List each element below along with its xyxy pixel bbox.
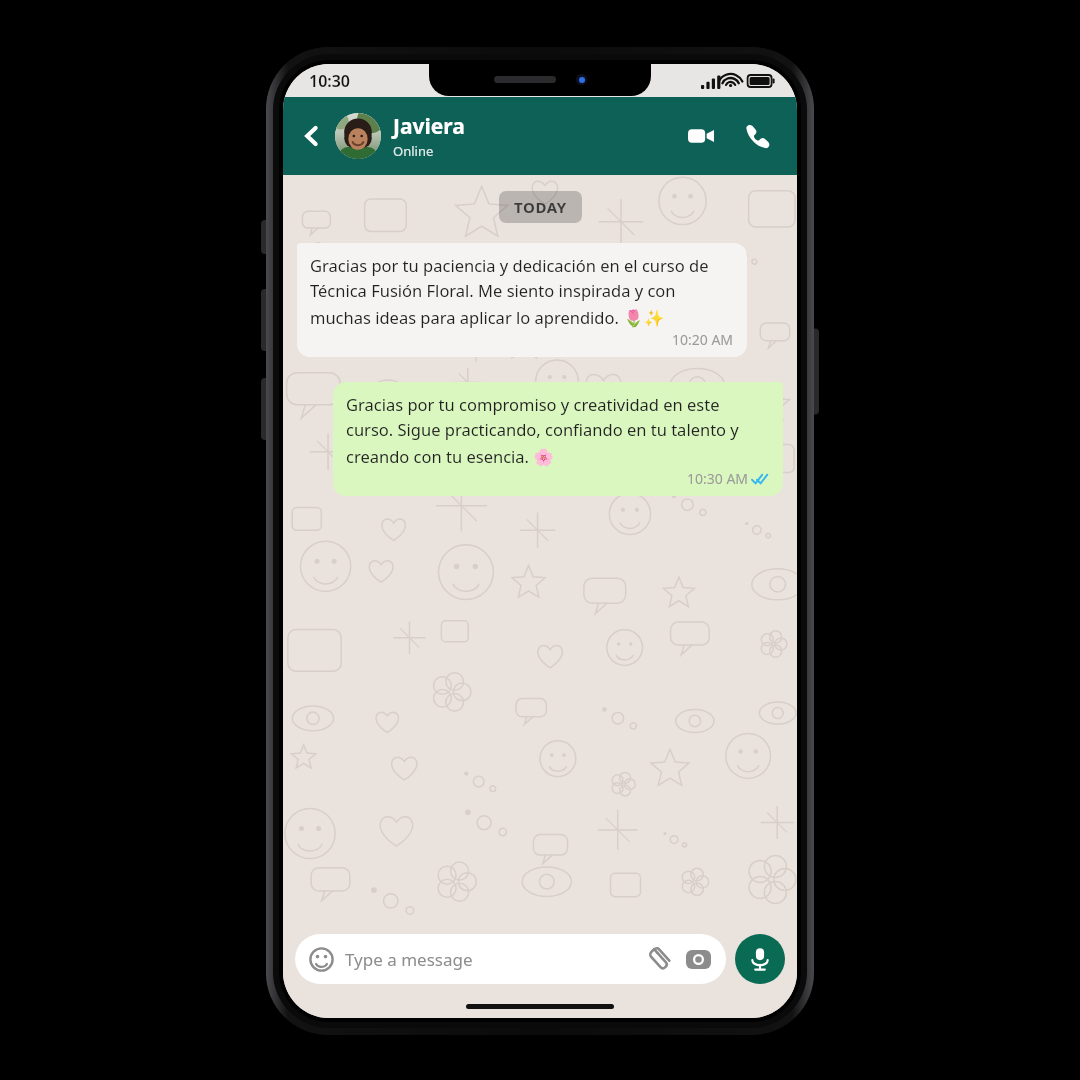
staticText: TODAY (514, 197, 567, 217)
button[interactable]: Video call (681, 116, 721, 156)
button[interactable]: Camera (682, 943, 714, 975)
staticText: Javiera (393, 112, 465, 141)
button[interactable]: Voice call (737, 116, 777, 156)
staticText: Type a message (345, 948, 642, 971)
button[interactable]: Emoji (295, 934, 726, 984)
staticText: 10:30 (309, 70, 351, 92)
staticText: 10:20 AM (672, 330, 734, 349)
button[interactable]: Javiera (393, 112, 681, 160)
staticText: 10:30 AM (687, 469, 749, 488)
button[interactable]: Profile photo (335, 113, 381, 159)
staticText: Gracias por tu paciencia y dedicación en… (310, 254, 734, 328)
button[interactable]: Voice message (735, 934, 785, 984)
button[interactable]: Back (293, 117, 331, 155)
button[interactable]: Gracias por tu compromiso y creatividad … (333, 382, 783, 496)
button[interactable]: Emoji (307, 945, 335, 973)
staticText: Gracias por tu compromiso y creatividad … (346, 393, 770, 467)
staticText: Online (393, 142, 434, 160)
button[interactable]: TODAY (499, 191, 582, 223)
button[interactable]: Attach (642, 943, 674, 975)
button[interactable]: Gracias por tu paciencia y dedicación en… (297, 243, 747, 357)
